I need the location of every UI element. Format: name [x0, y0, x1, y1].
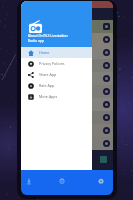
button[interactable]: Privacy Policies — [21, 58, 92, 69]
button[interactable] — [21, 85, 113, 98]
button[interactable] — [21, 98, 113, 111]
button[interactable]: Rate App — [21, 80, 92, 91]
button[interactable]: Home — [55, 174, 69, 188]
button[interactable]: Share App — [21, 69, 92, 80]
staticText: Share App — [39, 72, 57, 77]
button[interactable] — [21, 72, 113, 85]
staticText: Home — [39, 50, 50, 55]
staticText: Rate App — [39, 83, 55, 88]
staticText: About Dr.09.3 Livestation — [28, 33, 68, 38]
button[interactable]: Home — [21, 47, 92, 58]
button[interactable]: Downloads — [22, 174, 36, 188]
staticText: Privacy Policies — [39, 61, 65, 66]
button[interactable] — [21, 20, 113, 33]
button[interactable] — [21, 33, 113, 46]
button[interactable] — [21, 137, 113, 150]
button[interactable]: Settings — [94, 174, 108, 188]
button[interactable] — [21, 124, 113, 137]
button[interactable] — [21, 46, 113, 59]
button[interactable] — [21, 111, 113, 124]
button[interactable]: More Apps — [21, 91, 92, 102]
staticText: Radio app — [28, 38, 44, 43]
staticText: More Apps — [39, 94, 58, 99]
button[interactable] — [21, 59, 113, 72]
